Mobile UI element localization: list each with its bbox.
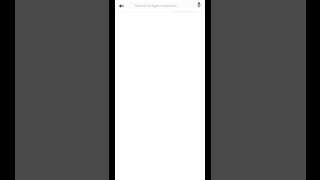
button[interactable]: Search or type a domain <box>127 1 196 9</box>
button[interactable]: Back <box>117 0 126 11</box>
staticText: Search or type a domain <box>135 3 177 8</box>
button[interactable]: Voice search <box>194 0 203 10</box>
